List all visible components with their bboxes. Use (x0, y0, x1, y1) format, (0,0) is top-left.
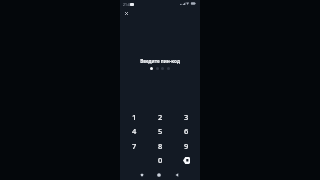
button[interactable]: 9 (175, 139, 197, 153)
button[interactable]: Recents (136, 169, 148, 180)
staticText: 9 (184, 141, 189, 151)
staticText: 21:47 (123, 2, 132, 7)
button[interactable]: 0 (149, 153, 171, 167)
button[interactable]: Home (153, 169, 165, 180)
staticText: 1 (132, 112, 137, 122)
staticText: Введите пин-код (140, 58, 180, 64)
button[interactable]: 8 (149, 139, 171, 153)
button[interactable]: 3 (175, 110, 197, 124)
staticText: 7 (132, 141, 137, 151)
staticText: 8 (158, 141, 163, 151)
button[interactable]: 4 (123, 124, 145, 138)
staticText: 6 (184, 126, 189, 136)
button[interactable]: Close (121, 8, 131, 18)
staticText: 2 (158, 112, 163, 122)
button[interactable]: Delete (175, 153, 197, 167)
button[interactable]: 7 (123, 139, 145, 153)
staticText: 3 (184, 112, 189, 122)
button[interactable]: 2 (149, 110, 171, 124)
button[interactable]: 5 (149, 124, 171, 138)
button[interactable]: Back (171, 169, 183, 180)
staticText: 5 (158, 126, 163, 136)
staticText: 4 (132, 126, 137, 136)
button[interactable]: 6 (175, 124, 197, 138)
button[interactable]: 1 (123, 110, 145, 124)
staticText: 0 (158, 155, 163, 165)
